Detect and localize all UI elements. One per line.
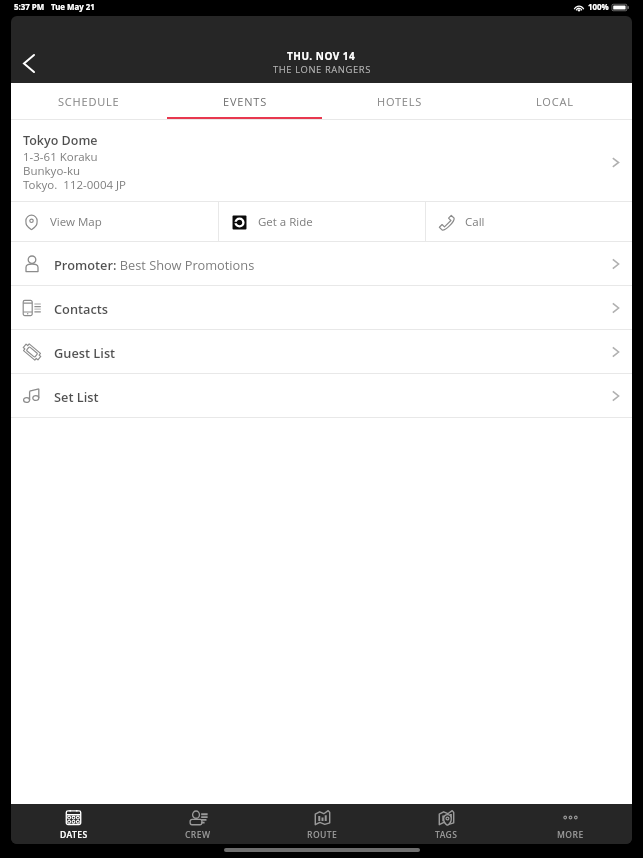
button[interactable]: View Map <box>11 202 218 242</box>
button[interactable]: EVENTS <box>167 83 322 120</box>
staticText: SCHEDULE <box>58 94 120 109</box>
button[interactable]: TAGS <box>384 804 508 844</box>
staticText: 5:37 PM <box>14 2 45 13</box>
button[interactable]: CREW <box>136 804 260 844</box>
staticText: LOCAL <box>536 94 574 109</box>
button[interactable]: DATES <box>11 804 136 844</box>
staticText: MORE <box>557 829 584 841</box>
staticText: TAGS <box>435 829 458 841</box>
button[interactable]: SCHEDULE <box>11 83 167 120</box>
button[interactable]: Contacts <box>11 286 632 330</box>
button[interactable]: Tokyo Dome <box>11 120 632 202</box>
button[interactable]: HOTELS <box>322 83 477 120</box>
staticText: DATES <box>60 829 88 841</box>
staticText: THE LONE RANGERS <box>273 63 371 76</box>
staticText: View Map <box>50 214 102 230</box>
staticText: Guest List <box>54 344 116 361</box>
button[interactable]: Set List <box>11 374 632 418</box>
staticText: Call <box>465 214 485 230</box>
button[interactable]: Promoter: Best Show Promotions <box>11 242 632 286</box>
button[interactable]: Back <box>11 43 53 83</box>
button[interactable]: MORE <box>508 804 632 844</box>
staticText: Contacts <box>54 300 109 317</box>
staticText: ROUTE <box>307 829 338 841</box>
staticText: Get a Ride <box>258 214 313 230</box>
button[interactable]: Guest List <box>11 330 632 374</box>
button[interactable]: LOCAL <box>477 83 632 120</box>
staticText: Tue May 21 <box>51 2 95 13</box>
staticText: 1-3-61 Koraku Bunkyo-ku Tokyo. 112-0004 … <box>23 149 127 192</box>
staticText: EVENTS <box>223 94 267 109</box>
button[interactable]: ROUTE <box>260 804 384 844</box>
staticText: HOTELS <box>377 94 423 109</box>
staticText: 100% <box>588 2 609 13</box>
staticText: THU. NOV 14 <box>287 49 356 63</box>
staticText: Set List <box>54 388 99 405</box>
button[interactable]: Call <box>426 202 632 242</box>
button[interactable]: Get a Ride <box>219 202 425 242</box>
staticText: Promoter: Best Show Promotions <box>54 256 255 273</box>
staticText: CREW <box>185 829 211 841</box>
staticText: Tokyo Dome <box>23 132 98 149</box>
